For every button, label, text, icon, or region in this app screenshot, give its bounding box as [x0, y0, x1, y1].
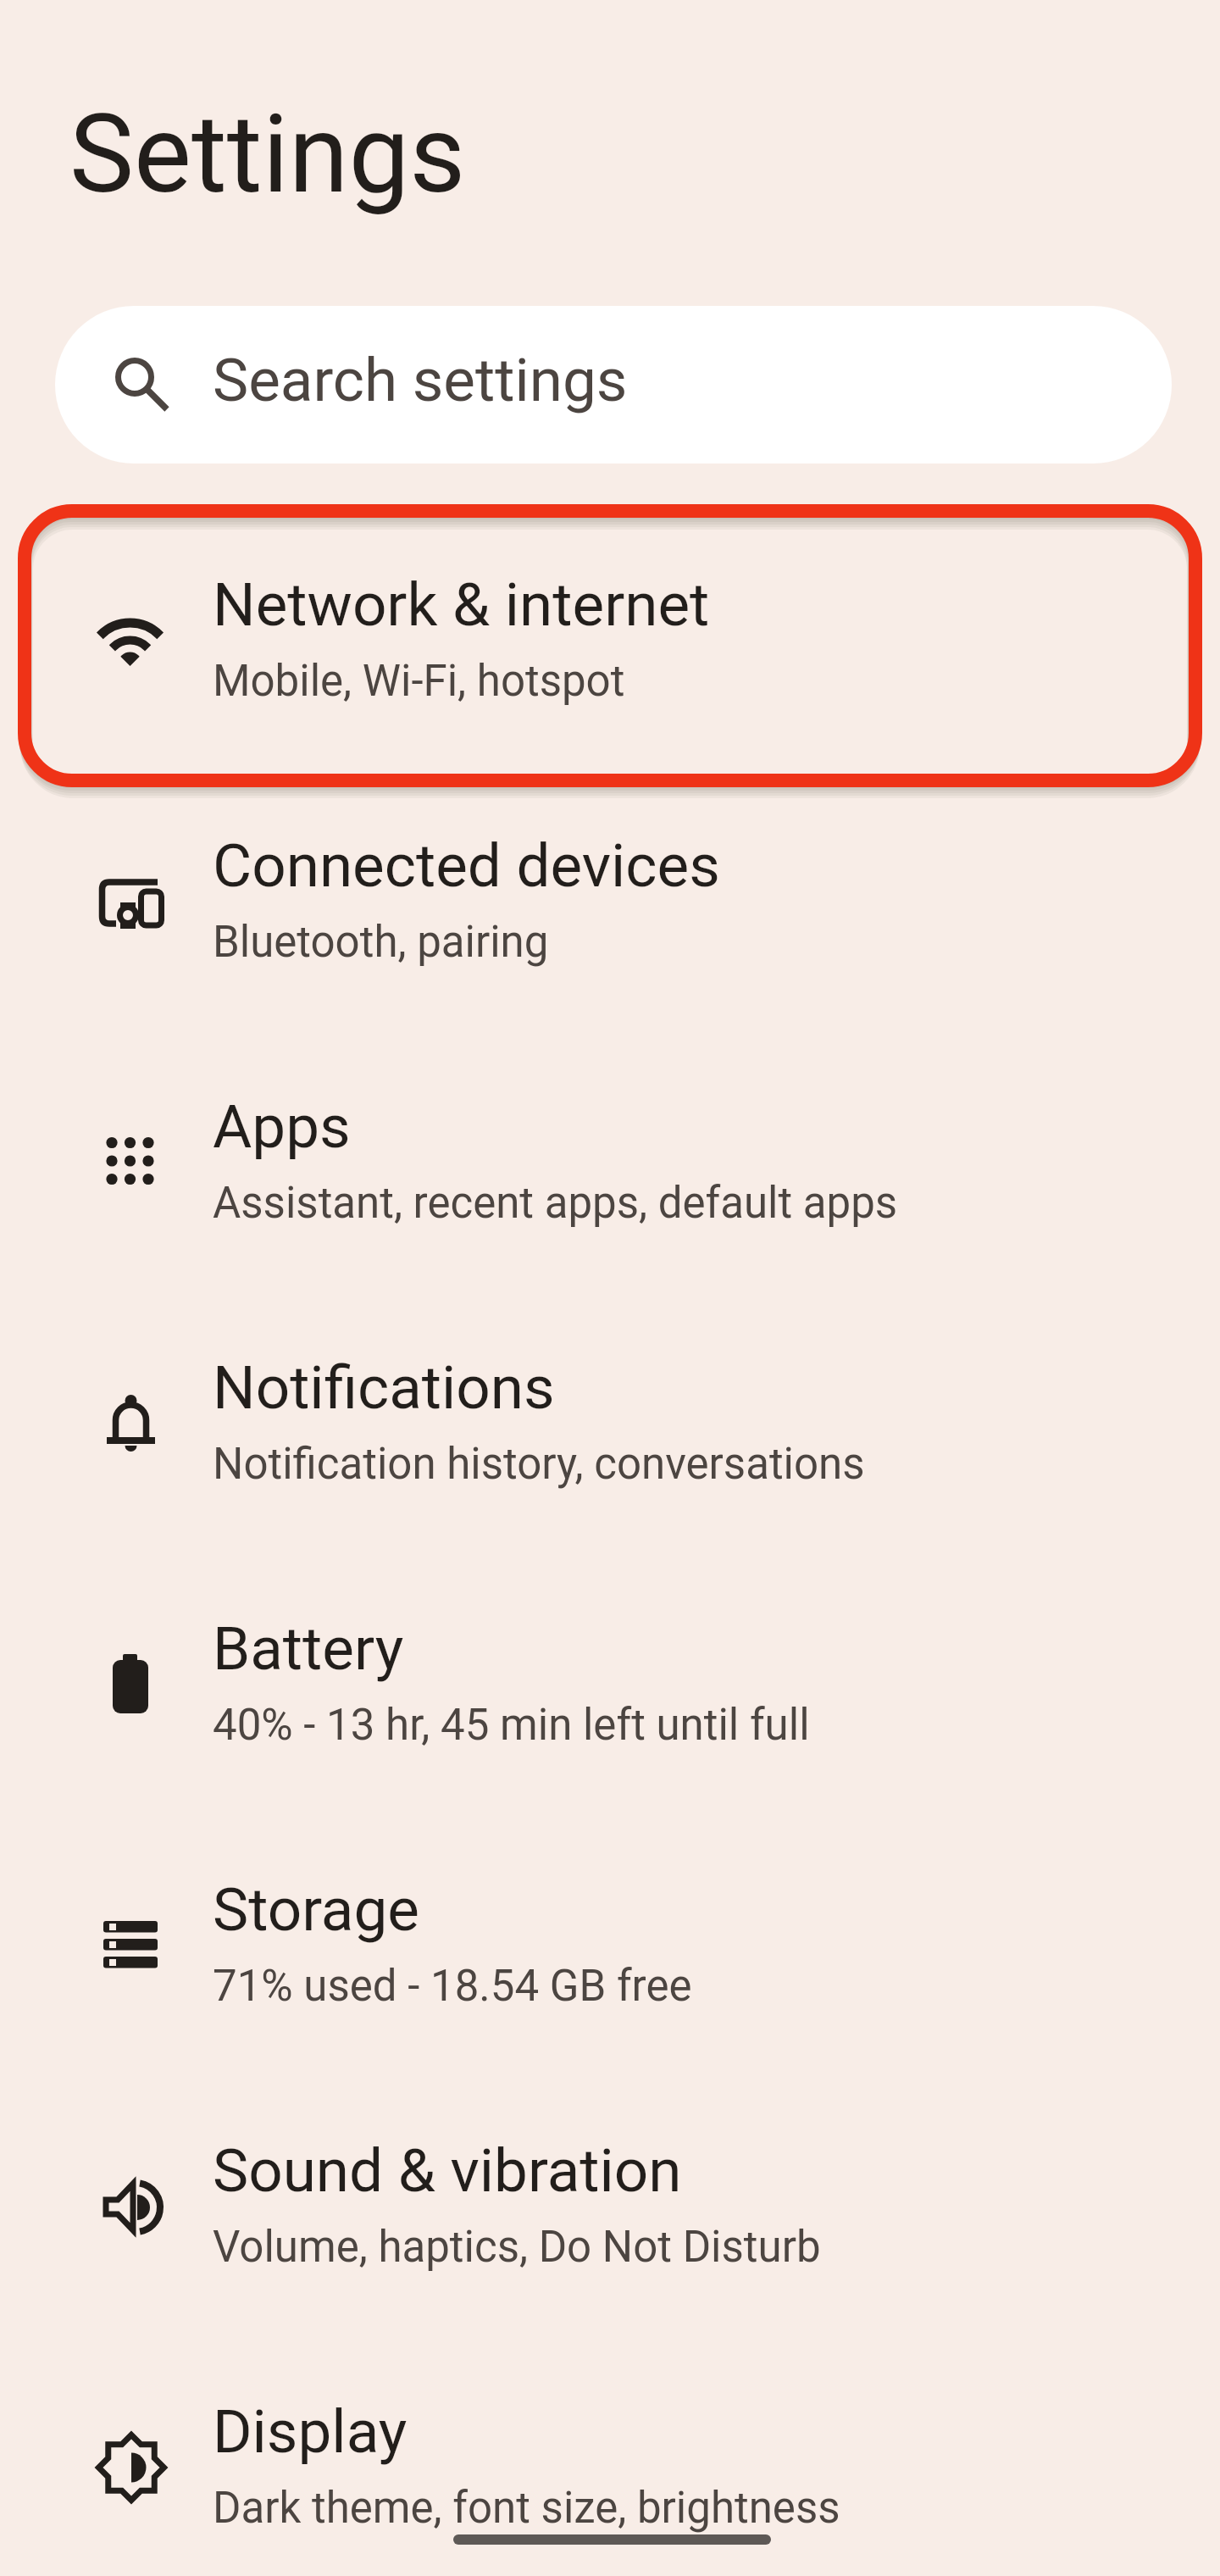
button[interactable]: Network & internet	[0, 514, 1220, 774]
staticText: Notification history, conversations	[213, 1439, 865, 1490]
staticText: Volume, haptics, Do Not Disturb	[213, 2222, 821, 2273]
staticText: Search settings	[213, 345, 628, 415]
staticText: 40% - 13 hr, 45 min left until full	[213, 1700, 810, 1751]
button[interactable]: Storage	[0, 1818, 1220, 2079]
staticText: Storage	[213, 1874, 419, 1945]
staticText: Dark theme, font size, brightness	[213, 2483, 840, 2534]
staticText: Battery	[213, 1613, 404, 1684]
staticText: 71% used - 18.54 GB free	[213, 1961, 692, 2012]
button[interactable]	[55, 306, 1172, 464]
staticText: Display	[213, 2396, 408, 2467]
button[interactable]: Connected devices	[0, 774, 1220, 1035]
staticText: Notifications	[213, 1352, 555, 1423]
button[interactable]: Display	[0, 2340, 1220, 2576]
button[interactable]: Apps	[0, 1035, 1220, 1296]
button[interactable]: Battery	[0, 1557, 1220, 1818]
staticText: Apps	[213, 1091, 351, 1162]
staticText: Assistant, recent apps, default apps	[213, 1178, 898, 1229]
staticText: Connected devices	[213, 830, 720, 901]
staticText: Settings	[69, 91, 466, 218]
button[interactable]: Sound & vibration	[0, 2079, 1220, 2340]
staticText: Bluetooth, pairing	[213, 917, 549, 968]
staticText: Network & internet	[213, 569, 710, 640]
button[interactable]: Notifications	[0, 1296, 1220, 1557]
staticText: Mobile, Wi-Fi, hotspot	[213, 656, 625, 707]
staticText: Sound & vibration	[213, 2135, 682, 2206]
